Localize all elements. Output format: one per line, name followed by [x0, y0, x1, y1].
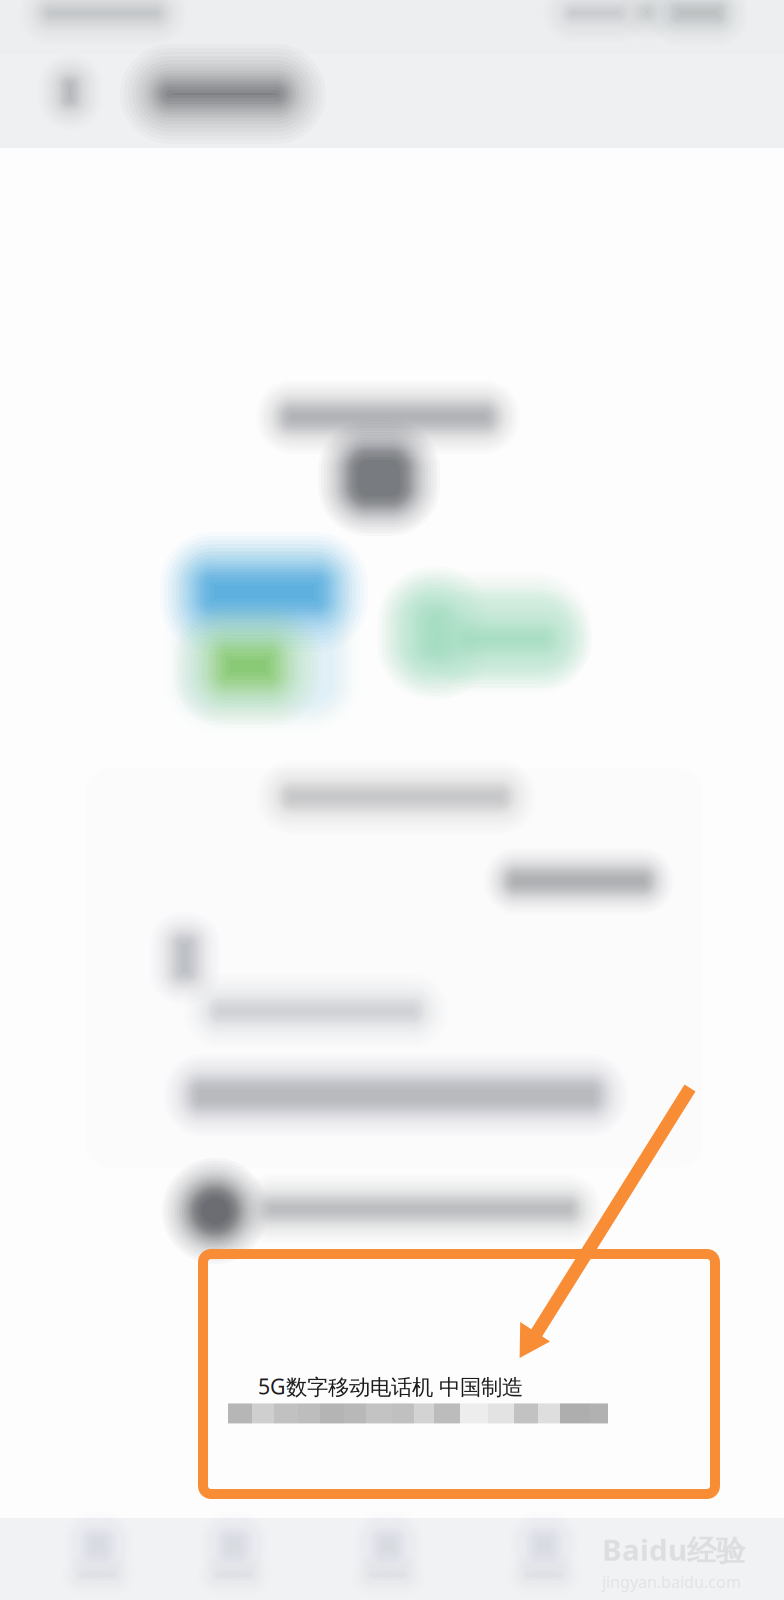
- staticText: Baidu经验: [602, 1530, 745, 1569]
- button[interactable]: Tab 1: [33, 1518, 163, 1600]
- button[interactable]: Tab 2: [169, 1518, 299, 1600]
- button[interactable]: Tab 4: [479, 1518, 609, 1600]
- staticText: 5G数字移动电话机 中国制造: [258, 1372, 523, 1400]
- staticText: jingyan.baidu.com: [602, 1571, 741, 1592]
- button[interactable]: Back: [0, 54, 120, 148]
- button[interactable]: Tab 3: [323, 1518, 453, 1600]
